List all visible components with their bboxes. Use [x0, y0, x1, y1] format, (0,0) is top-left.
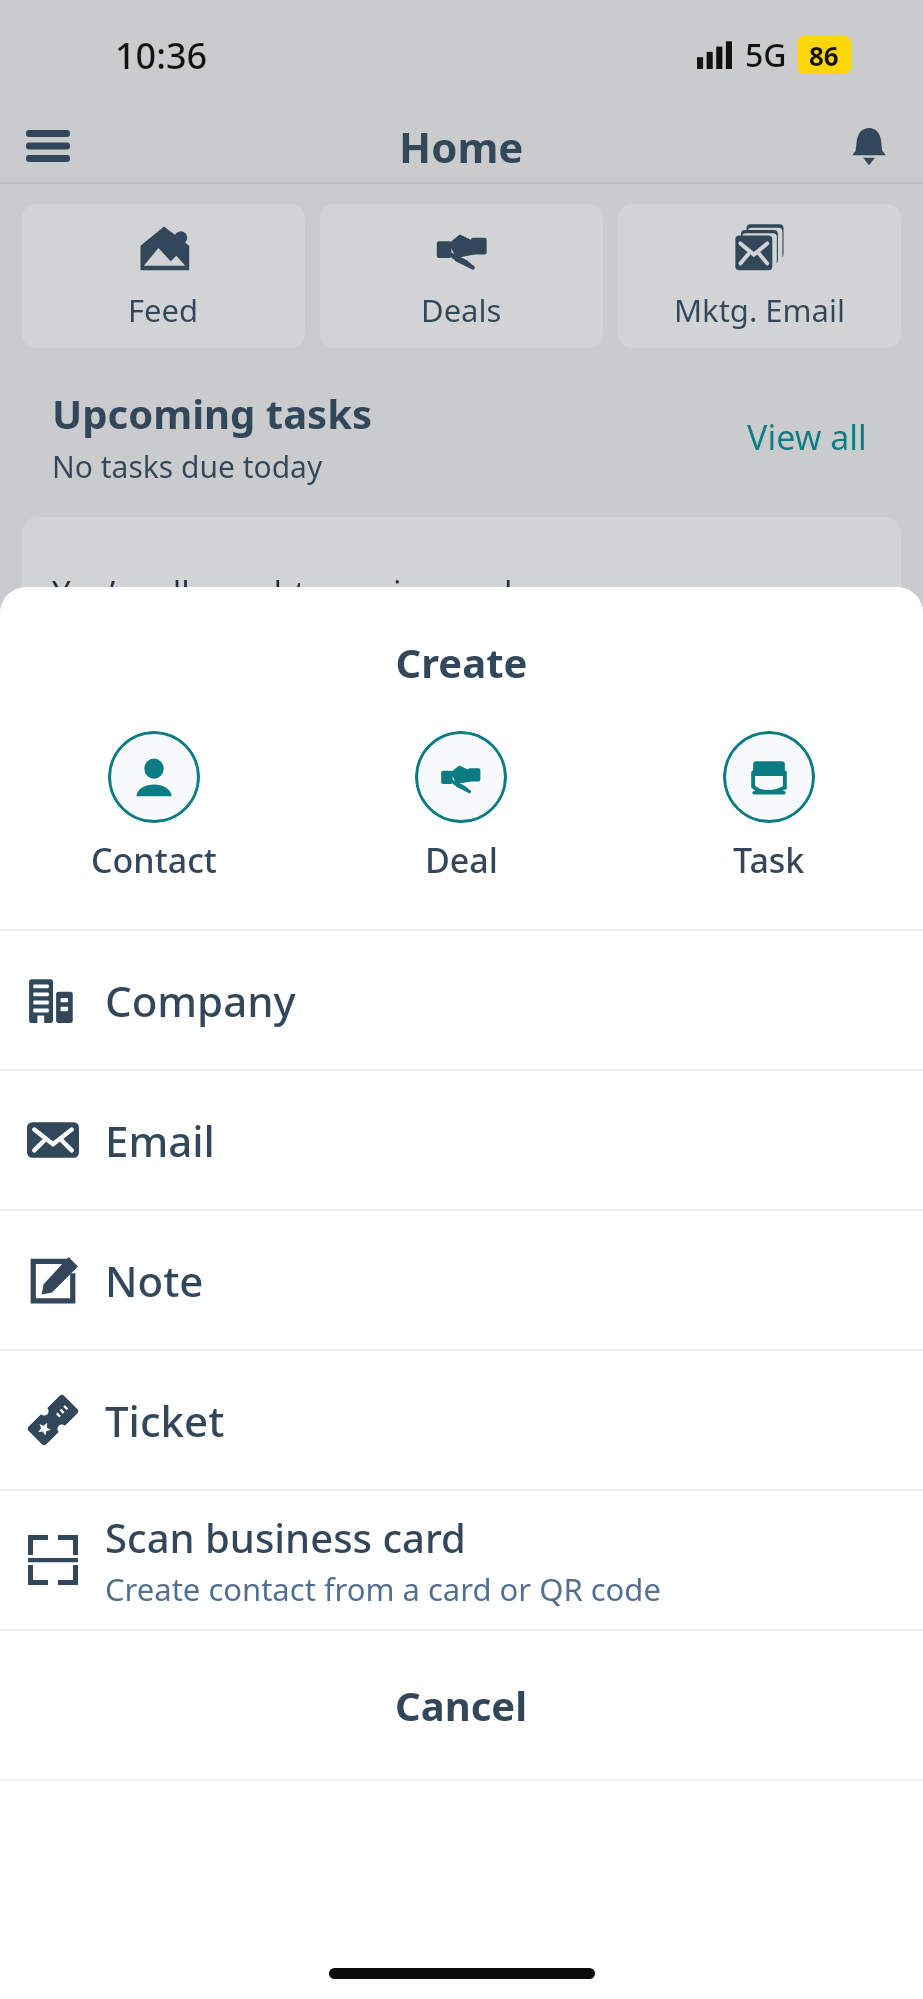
- staticText: Ticket: [105, 1392, 225, 1449]
- staticText: Create: [0, 635, 923, 689]
- staticText: Deal: [425, 837, 498, 883]
- button[interactable]: Task: [615, 731, 923, 883]
- button[interactable]: Note: [0, 1211, 923, 1349]
- staticText: Home: [399, 118, 524, 175]
- button[interactable]: Notifications: [841, 118, 897, 174]
- staticText: 5G: [745, 33, 787, 77]
- button[interactable]: Feed: [22, 204, 305, 348]
- staticText: View all: [747, 414, 867, 460]
- button[interactable]: Deal: [307, 731, 615, 883]
- staticText: 10:36: [115, 31, 208, 80]
- staticText: Cancel: [395, 1678, 528, 1732]
- button[interactable]: Cancel: [0, 1631, 923, 1779]
- staticText: Company: [105, 972, 296, 1029]
- staticText: Contact: [91, 837, 217, 883]
- button[interactable]: Email: [0, 1071, 923, 1209]
- staticText: Feed: [128, 289, 199, 331]
- button[interactable]: Menu: [20, 118, 76, 174]
- staticText: Mktg. Email: [674, 289, 845, 331]
- staticText: Create contact from a card or QR code: [105, 1568, 661, 1610]
- button[interactable]: Mktg. Email: [618, 204, 901, 348]
- button[interactable]: Contact: [0, 731, 307, 883]
- button[interactable]: Company: [0, 931, 923, 1069]
- staticText: Upcoming tasks: [52, 386, 373, 440]
- staticText: Scan business card: [105, 1510, 466, 1564]
- button[interactable]: Scan business card: [0, 1491, 923, 1629]
- staticText: Note: [105, 1252, 204, 1309]
- staticText: Task: [733, 837, 805, 883]
- button[interactable]: Ticket: [0, 1351, 923, 1489]
- button[interactable]: Deals: [320, 204, 603, 348]
- staticText: No tasks due today: [52, 446, 323, 487]
- staticText: Email: [105, 1112, 215, 1169]
- button[interactable]: View all: [743, 410, 871, 464]
- staticText: Deals: [421, 289, 502, 331]
- staticText: You’re all caught up, nice work: [52, 570, 522, 615]
- staticText: 86: [809, 38, 839, 73]
